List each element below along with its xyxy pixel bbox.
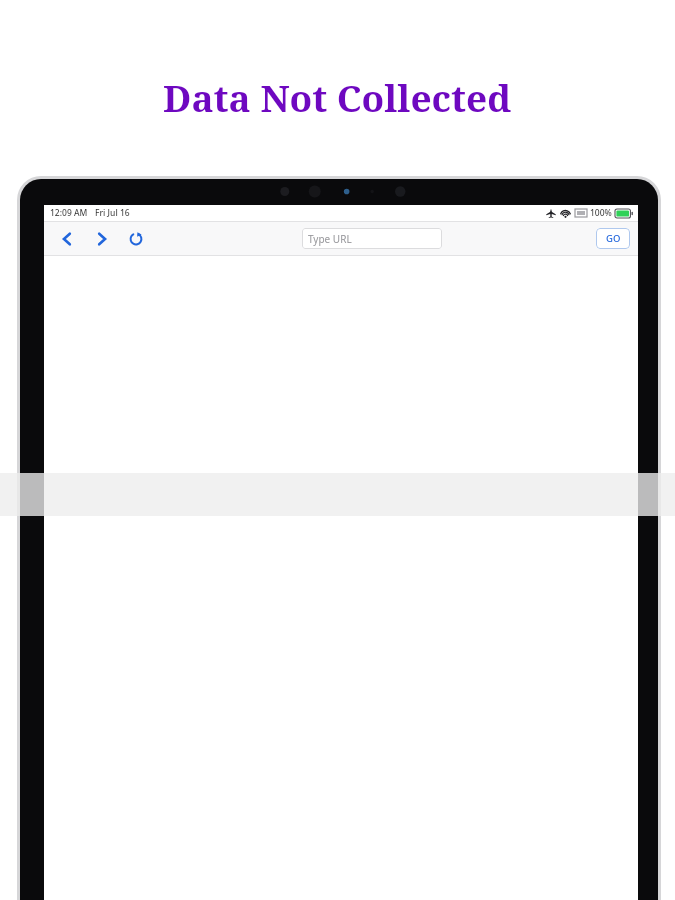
button[interactable]: Type URL xyxy=(302,228,442,249)
staticText: 100% xyxy=(590,207,612,219)
button[interactable]: Reload xyxy=(123,226,149,252)
button[interactable]: GO xyxy=(596,228,630,249)
button[interactable]: Forward xyxy=(89,226,115,252)
staticText: Data Not Collected xyxy=(163,72,512,122)
staticText: GO xyxy=(606,232,621,245)
staticText: Type URL xyxy=(308,232,352,246)
staticText: 12:09 AM xyxy=(50,207,88,219)
staticText: Fri Jul 16 xyxy=(95,207,130,219)
button[interactable]: Back xyxy=(54,226,80,252)
